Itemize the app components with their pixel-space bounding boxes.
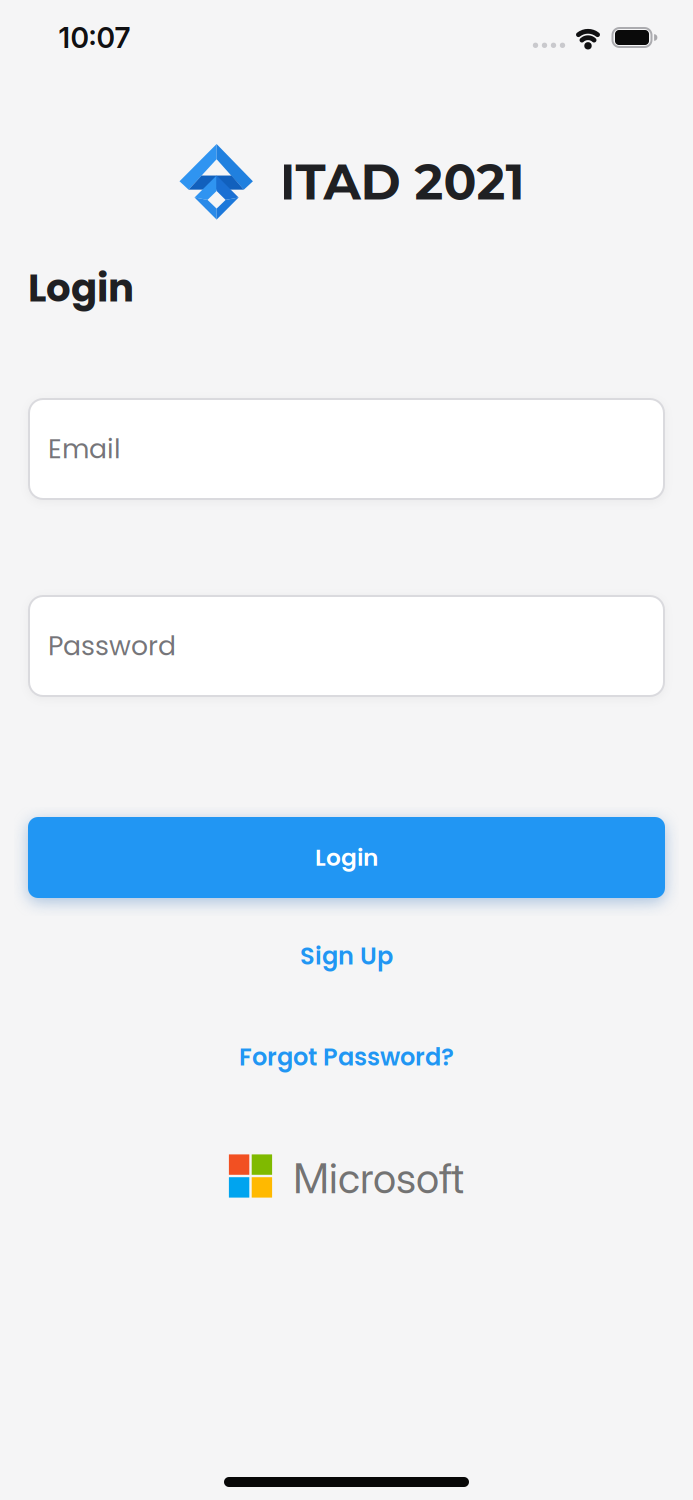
button[interactable]: Microsoft (229, 1154, 464, 1198)
staticText: Microsoft (293, 1153, 464, 1203)
button[interactable]: Email (0, 398, 693, 500)
staticText: Email (48, 430, 121, 468)
staticText: 10:07 (59, 20, 131, 55)
button[interactable]: Login (0, 817, 693, 898)
staticText: Password (48, 627, 176, 665)
button[interactable]: Password (0, 595, 693, 697)
staticText: Login (28, 261, 134, 315)
button[interactable]: Forgot Password? (239, 1037, 454, 1077)
button[interactable]: Sign Up (300, 936, 393, 976)
staticText: Sign Up (300, 939, 393, 973)
staticText: ITAD 2021 (279, 152, 524, 212)
staticText: Forgot Password? (239, 1040, 454, 1074)
staticText: Login (315, 841, 378, 874)
